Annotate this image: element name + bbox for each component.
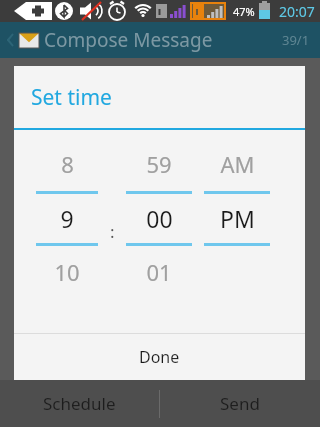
staticText: Done <box>139 346 180 368</box>
button[interactable]: 59 <box>126 130 192 333</box>
staticText: AM <box>220 149 255 179</box>
staticText: 8 <box>61 149 74 179</box>
staticText: Compose Message <box>44 27 213 53</box>
button[interactable]: 8 <box>36 130 98 333</box>
button[interactable]: AM <box>204 130 270 333</box>
staticText: : <box>110 220 115 243</box>
button[interactable]: Send <box>160 380 320 427</box>
staticText: 01 <box>146 257 172 287</box>
staticText: Send <box>220 392 260 415</box>
staticText: Set time <box>31 83 112 112</box>
button[interactable]: Navigate up <box>0 22 43 58</box>
staticText: 9 <box>60 203 74 234</box>
staticText: PM <box>220 203 255 234</box>
button[interactable]: Schedule <box>0 380 159 427</box>
staticText: 59 <box>146 149 172 179</box>
staticText: 39/1 <box>282 31 310 49</box>
staticText: Schedule <box>43 392 116 415</box>
staticText: 47% <box>233 4 255 19</box>
staticText: 20:07 <box>279 2 315 21</box>
staticText: 00 <box>146 203 173 234</box>
button[interactable]: Done <box>14 334 305 380</box>
staticText: 10 <box>54 257 80 287</box>
